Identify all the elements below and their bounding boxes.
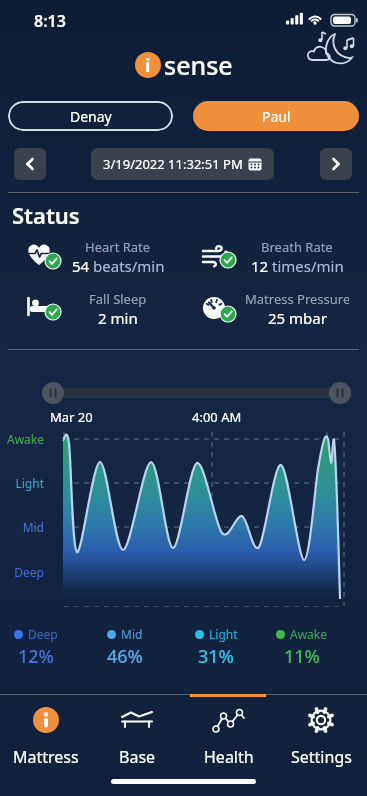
staticText: Light	[209, 626, 238, 642]
button[interactable]	[320, 148, 352, 180]
staticText: 8:13	[34, 10, 66, 32]
staticText: Mid	[6, 519, 44, 535]
staticText: Denay	[70, 107, 112, 126]
staticText: Mid	[121, 626, 143, 642]
staticText: i	[145, 53, 151, 78]
staticText: 12%	[18, 644, 54, 669]
button[interactable]: Paul	[193, 101, 359, 131]
staticText: 11%	[284, 644, 320, 669]
staticText: sense	[164, 48, 233, 82]
button[interactable]: Base	[91, 697, 183, 770]
button[interactable]: Denay	[8, 101, 173, 131]
staticText: Mar 20	[50, 408, 93, 424]
button[interactable]: Mattress	[0, 697, 91, 770]
staticText: Breath Rate	[261, 238, 333, 256]
staticText: 25 mbar	[268, 308, 327, 328]
button[interactable]: 3/19/2022 11:32:51 PM	[91, 148, 274, 180]
staticText: Awake	[6, 431, 44, 447]
staticText: Light	[6, 475, 44, 491]
staticText: 2 min	[98, 308, 138, 328]
staticText: Base	[119, 746, 156, 768]
staticText: 46%	[107, 644, 143, 669]
staticText: Heart Rate	[85, 238, 151, 256]
button[interactable]: Health	[183, 697, 275, 770]
button[interactable]	[329, 382, 351, 404]
button[interactable]	[14, 148, 46, 180]
staticText: 4:00 AM	[192, 408, 242, 424]
button[interactable]: Settings	[275, 697, 367, 770]
staticText: Awake	[290, 626, 328, 642]
staticText: 3/19/2022 11:32:51 PM	[103, 155, 243, 173]
staticText: Status	[12, 200, 80, 230]
staticText: Fall Sleep	[89, 290, 147, 308]
staticText: Health	[204, 746, 254, 768]
staticText: Deep	[28, 626, 58, 642]
staticText: Deep	[6, 564, 44, 580]
button[interactable]	[42, 382, 64, 404]
staticText: 12 times/min	[251, 256, 344, 276]
staticText: Matress Pressure	[245, 290, 349, 308]
staticText: Paul	[262, 107, 291, 126]
staticText: Mattress	[13, 746, 79, 768]
staticText: 54 beats/min	[72, 256, 165, 276]
staticText: Settings	[291, 746, 352, 768]
staticText: 31%	[198, 644, 234, 669]
